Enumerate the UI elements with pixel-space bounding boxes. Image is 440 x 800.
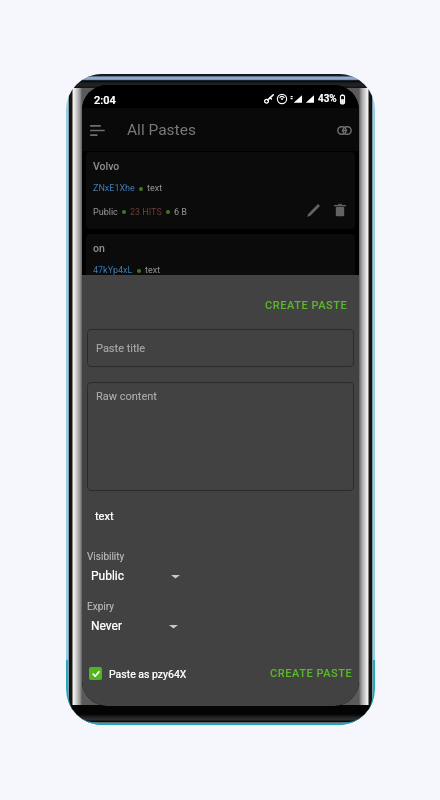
- staticText: CREATE PASTE: [270, 667, 353, 680]
- staticText: Never: [91, 619, 123, 633]
- button[interactable]: CREATE PASTE: [270, 667, 353, 680]
- staticText: 47kYp4xL: [93, 265, 133, 276]
- staticText: Raw content: [96, 390, 157, 403]
- staticText: Visibility: [87, 551, 125, 563]
- button[interactable]: on: [86, 234, 355, 282]
- button[interactable]: Paste as pzy64X: [89, 667, 187, 680]
- staticText: CREATE PASTE: [265, 299, 348, 312]
- staticText: All Pastes: [127, 121, 196, 139]
- button[interactable]: Edit: [303, 199, 325, 221]
- button[interactable]: Share link: [329, 115, 359, 145]
- button[interactable]: Public: [82, 569, 186, 583]
- staticText: ZNxE1Xhe: [93, 183, 135, 194]
- staticText: Paste as pzy64X: [109, 668, 187, 680]
- staticText: 2:04: [94, 94, 116, 107]
- staticText: on: [93, 242, 105, 254]
- staticText: Expiry: [87, 601, 114, 613]
- staticText: 43%: [318, 93, 337, 105]
- button[interactable]: Never: [82, 619, 184, 633]
- button[interactable]: Delete: [329, 199, 351, 221]
- staticText: text: [147, 183, 163, 194]
- staticText: 23 HITS: [130, 207, 162, 218]
- staticText: Paste title: [96, 342, 146, 355]
- staticText: 6 B: [174, 207, 187, 218]
- staticText: Public: [91, 569, 125, 583]
- button[interactable]: Volvo: [86, 152, 355, 229]
- button[interactable]: Raw content: [87, 382, 354, 491]
- button[interactable]: CREATE PASTE: [265, 299, 348, 312]
- button[interactable]: Paste title: [87, 329, 354, 367]
- button[interactable]: Sort menu: [82, 113, 114, 147]
- staticText: Volvo: [93, 160, 120, 172]
- staticText: Public: [93, 207, 118, 218]
- staticText: text: [145, 265, 161, 276]
- staticText: text: [95, 510, 114, 523]
